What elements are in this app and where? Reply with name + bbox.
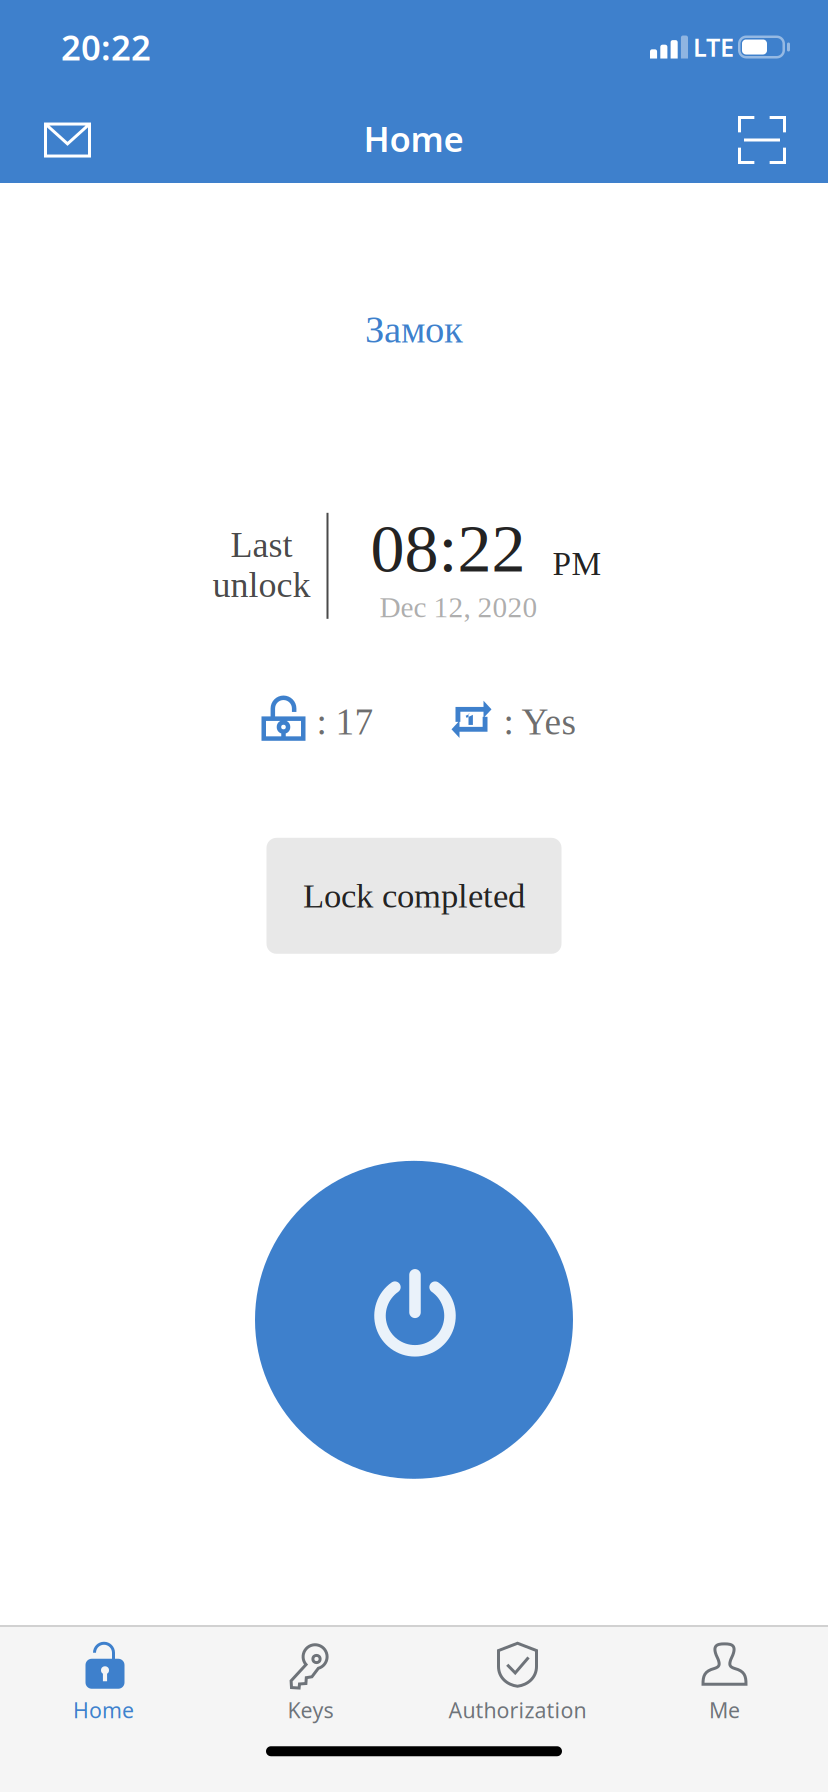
staticText: Keys <box>287 1696 333 1724</box>
button[interactable]: Scan <box>716 97 805 180</box>
staticText: LTE <box>693 30 734 64</box>
staticText: Me <box>709 1696 740 1724</box>
staticText: PM <box>552 545 601 582</box>
staticText: Dec 12, 2020 <box>379 591 537 624</box>
button[interactable]: Power <box>255 1161 573 1479</box>
staticText: Lock completed <box>303 877 525 915</box>
staticText: Last <box>230 525 292 565</box>
staticText: : Yes <box>503 701 576 742</box>
button[interactable]: Keys <box>207 1627 414 1727</box>
staticText: 20:22 <box>61 24 151 70</box>
staticText: Authorization <box>448 1696 586 1724</box>
staticText: Замок <box>365 308 463 351</box>
staticText: Home <box>73 1696 134 1724</box>
staticText: : 17 <box>316 701 373 742</box>
staticText: Home <box>363 115 463 161</box>
staticText: unlock <box>212 565 310 605</box>
staticText: 08:22 <box>370 511 525 586</box>
button[interactable]: Home <box>0 1627 207 1727</box>
button[interactable]: Messages <box>23 99 111 177</box>
button[interactable]: Authorization <box>414 1627 621 1727</box>
button[interactable]: Me <box>621 1627 828 1727</box>
